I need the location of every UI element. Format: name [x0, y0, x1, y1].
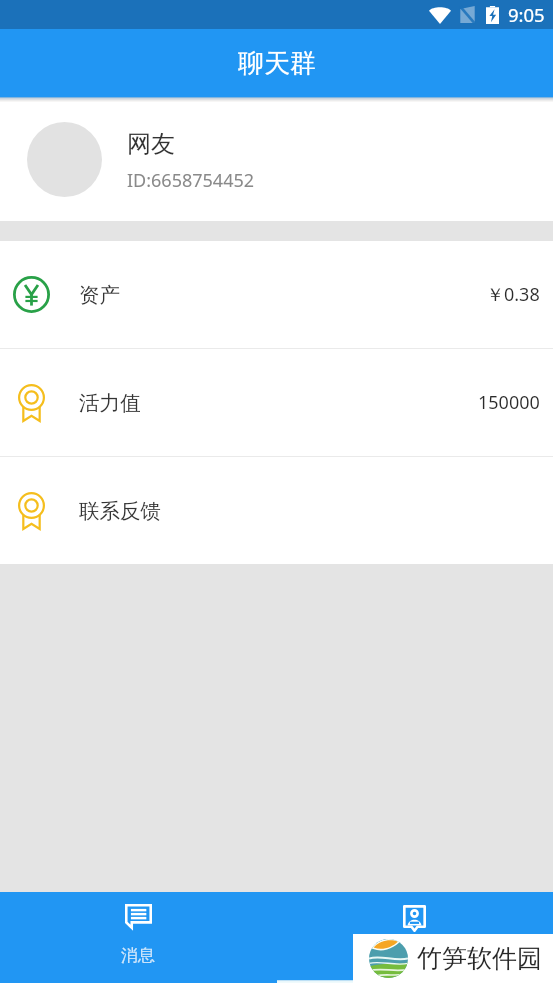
staticText: ￥0.38: [486, 282, 540, 307]
button[interactable]: 联系反馈: [0, 457, 553, 564]
staticText: 150000: [478, 390, 540, 415]
button[interactable]: 我的: [276, 892, 553, 983]
staticText: 联系反馈: [79, 498, 161, 524]
other: 我的: [403, 905, 426, 932]
staticText: 资产: [79, 282, 120, 308]
staticText: 聊天群: [238, 47, 316, 80]
button[interactable]: 活力值: [0, 349, 553, 456]
staticText: 9:05: [508, 2, 545, 27]
staticText: ID:6658754452: [127, 168, 255, 193]
button[interactable]: 资产: [0, 241, 553, 348]
button[interactable]: 网友: [0, 102, 553, 221]
button[interactable]: 消息: [0, 892, 276, 983]
staticText: 活力值: [79, 390, 141, 416]
staticText: 网友: [127, 129, 175, 159]
staticText: 消息: [121, 945, 155, 966]
staticText: 竹笋软件园: [417, 943, 542, 974]
